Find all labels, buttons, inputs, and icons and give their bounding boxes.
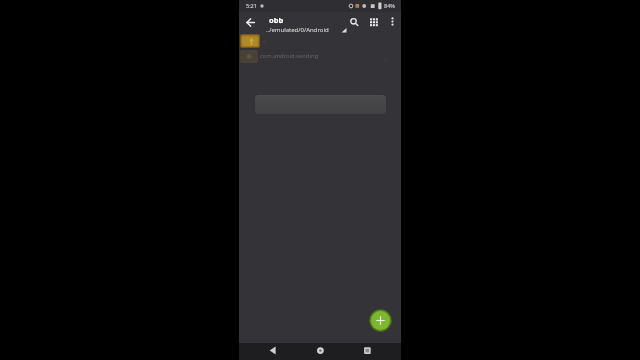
button[interactable] xyxy=(385,14,400,30)
button[interactable] xyxy=(312,343,328,360)
button[interactable] xyxy=(242,14,259,31)
button[interactable]: obb xyxy=(266,14,348,34)
staticText: .. xyxy=(262,36,266,44)
button[interactable] xyxy=(366,14,382,30)
button[interactable] xyxy=(346,14,362,30)
staticText: obb xyxy=(269,15,284,25)
staticText: 5:21 xyxy=(246,2,257,9)
staticText: com.android.vending xyxy=(260,52,319,60)
button[interactable] xyxy=(369,309,392,332)
button[interactable]: com.android.vending xyxy=(239,49,401,64)
button[interactable] xyxy=(265,343,281,360)
staticText: ../emulated/0/Android xyxy=(266,26,329,34)
button[interactable]: .. xyxy=(239,33,401,49)
staticText: 84% xyxy=(384,2,395,9)
button[interactable] xyxy=(359,343,375,360)
